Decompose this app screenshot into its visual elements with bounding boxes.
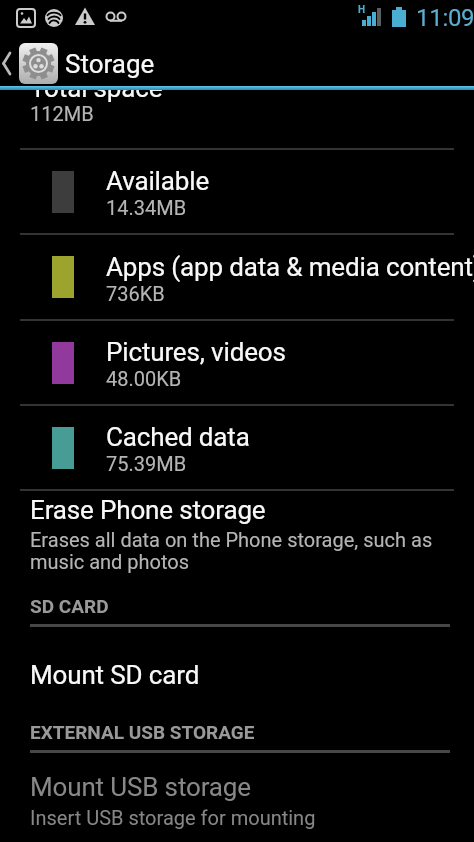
staticText: Storage [65, 49, 155, 79]
button[interactable]: Pictures, videos [0, 321, 474, 404]
button[interactable]: Apps (app data & media content) [0, 235, 474, 319]
button[interactable]: Cached data [0, 406, 474, 489]
button[interactable]: Storage [0, 36, 474, 86]
staticText: Total space [30, 90, 163, 103]
staticText: 14.34MB [106, 196, 187, 219]
staticText: 112MB [30, 102, 94, 125]
staticText: 75.39MB [106, 452, 187, 475]
button[interactable]: Available [0, 150, 474, 233]
staticText: 736KB [106, 282, 165, 305]
button[interactable]: Erase Phone storage [0, 491, 474, 574]
staticText: Cached data [106, 422, 250, 452]
staticText: 11:09 [416, 4, 474, 32]
staticText: Mount SD card [30, 660, 200, 690]
staticText: SD CARD [30, 595, 109, 617]
staticText: Available [106, 166, 210, 196]
staticText: Erases all data on the Phone storage, su… [30, 528, 433, 574]
staticText: 48.00KB [106, 367, 182, 390]
staticText: Mount USB storage [30, 772, 251, 802]
staticText: Erase Phone storage [30, 495, 266, 525]
staticText: Apps (app data & media content) [106, 252, 474, 282]
button[interactable]: Mount SD card [0, 660, 474, 690]
staticText: Insert USB storage for mounting [30, 806, 316, 829]
button[interactable]: Total space [0, 90, 474, 148]
staticText: H [358, 4, 366, 16]
staticText: EXTERNAL USB STORAGE [30, 721, 255, 743]
button[interactable]: Mount USB storage [0, 772, 474, 829]
staticText: Pictures, videos [106, 337, 286, 367]
